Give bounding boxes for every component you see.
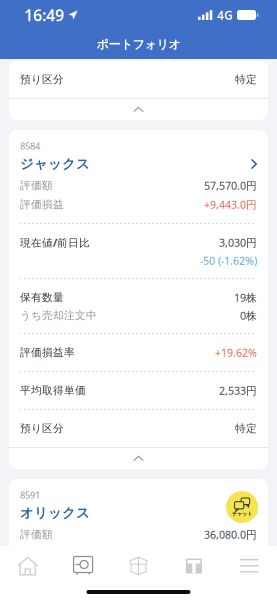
staticText: 評価額 [20,528,53,541]
staticText: ポートフォリオ [96,37,180,52]
staticText: チャット [232,510,252,517]
staticText: ジャックス [20,156,90,172]
button[interactable]: 折りたたむ [9,99,268,120]
staticText: 預り区分 [20,422,64,435]
staticText: 16:49 [24,4,64,26]
button[interactable]: 折りたたむ [9,448,268,469]
staticText: 特定 [235,422,257,435]
button[interactable]: オリックス [20,501,257,525]
staticText: オリックス [20,505,90,521]
button[interactable]: 商品 [111,546,166,586]
button[interactable]: メニュー [222,546,277,586]
button[interactable]: マーケット [166,546,222,586]
staticText: +4,120.0円 [204,546,257,561]
staticText: 3,030円 [219,235,257,250]
staticText: 保有数量 [20,291,64,304]
button[interactable]: ジャックス [20,152,257,176]
staticText: +9,443.0円 [204,197,257,212]
button[interactable]: 資産 [55,546,111,586]
staticText: 36,080.0円 [204,527,257,542]
staticText: 現在値/前日比 [20,584,90,599]
staticText: 評価損益 [20,198,64,211]
staticText: 評価損益 [20,547,64,560]
staticText: 評価額 [20,179,53,192]
staticText: 平均取得単価 [20,384,86,397]
staticText: 4G [217,7,233,23]
staticText: -50 (-1.62%) [200,253,257,268]
staticText: 0株 [240,308,257,323]
staticText: 8584 [20,140,40,152]
staticText: 評価損益率 [20,346,75,359]
staticText: 預り区分 [20,73,64,86]
staticText: 57,570.0円 [204,178,257,193]
staticText: うち売却注文中 [20,309,97,322]
staticText: 特定 [235,73,257,86]
staticText: +19.62% [215,345,257,360]
staticText: 2,533円 [219,383,257,398]
button[interactable]: ホーム [0,546,55,586]
staticText: 現在値/前日比 [20,235,90,250]
staticText: 19株 [234,290,257,305]
staticText: 8591 [20,489,40,501]
button[interactable]: チャット [226,491,258,523]
